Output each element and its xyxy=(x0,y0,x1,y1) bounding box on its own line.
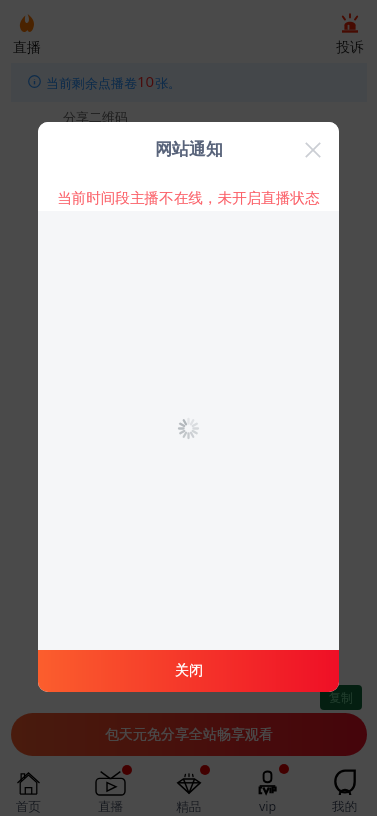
button[interactable]: 复制 xyxy=(320,685,362,710)
staticText: 当前剩余点播卷 xyxy=(46,75,137,91)
button[interactable]: 直播 xyxy=(84,766,136,815)
button[interactable]: 精品 xyxy=(162,766,214,815)
staticText: vip xyxy=(259,798,277,815)
staticText: 复制 xyxy=(329,690,353,705)
staticText: 直播 xyxy=(98,799,123,815)
staticText: 10 xyxy=(137,71,155,91)
button[interactable]: 包天元免分享全站畅享观看 xyxy=(11,713,367,756)
button[interactable]: 投诉 xyxy=(336,13,364,57)
staticText: 首页 xyxy=(16,799,41,815)
button[interactable]: Close xyxy=(305,142,321,158)
staticText: 张。 xyxy=(155,75,181,91)
button[interactable]: 直播 xyxy=(13,14,41,57)
staticText: 包天元免分享全站畅享观看 xyxy=(105,726,273,744)
staticText: 精品 xyxy=(176,799,201,815)
staticText: 我的 xyxy=(332,799,357,815)
staticText: 分享二维码 xyxy=(63,109,128,125)
button[interactable]: 首页 xyxy=(2,766,54,815)
staticText: 直播 xyxy=(13,39,41,57)
staticText: 投诉 xyxy=(336,39,364,57)
button[interactable]: 我的 xyxy=(318,766,370,815)
staticText: 关闭 xyxy=(175,662,203,680)
button[interactable]: 关闭 xyxy=(38,650,339,692)
staticText: 网站通知 xyxy=(155,139,223,160)
button[interactable]: vip xyxy=(241,766,293,815)
staticText: 当前时间段主播不在线，未开启直播状态 xyxy=(57,189,320,207)
